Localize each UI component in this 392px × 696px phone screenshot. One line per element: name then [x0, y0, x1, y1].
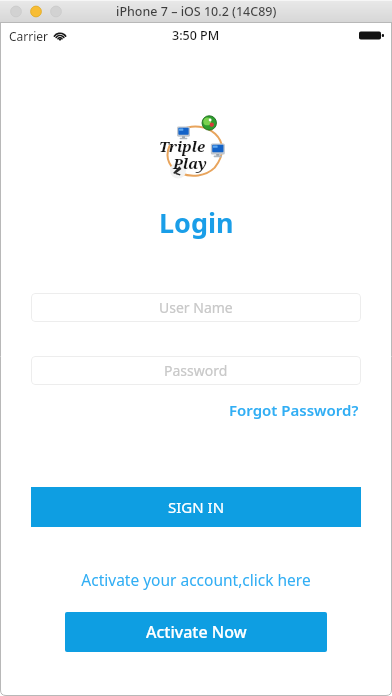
staticText: Triple: [159, 136, 206, 156]
staticText: iPhone 7 – iOS 10.2 (14C89): [116, 3, 277, 20]
staticText: Play: [173, 153, 207, 173]
button[interactable]: Activate Now: [65, 612, 327, 652]
staticText: Carrier: [9, 28, 49, 44]
button[interactable]: User Name: [31, 293, 361, 322]
staticText: 3:50 PM: [172, 27, 220, 44]
button[interactable]: Password: [31, 356, 361, 385]
staticText: SIGN IN: [168, 497, 225, 517]
staticText: Activate Now: [146, 621, 247, 643]
button[interactable]: Activate your account,click here: [79, 567, 313, 592]
button[interactable]: SIGN IN: [31, 487, 361, 527]
staticText: User Name: [159, 298, 233, 317]
staticText: Login: [159, 204, 234, 241]
button[interactable]: Forgot Password?: [227, 398, 361, 422]
staticText: Password: [164, 361, 228, 380]
